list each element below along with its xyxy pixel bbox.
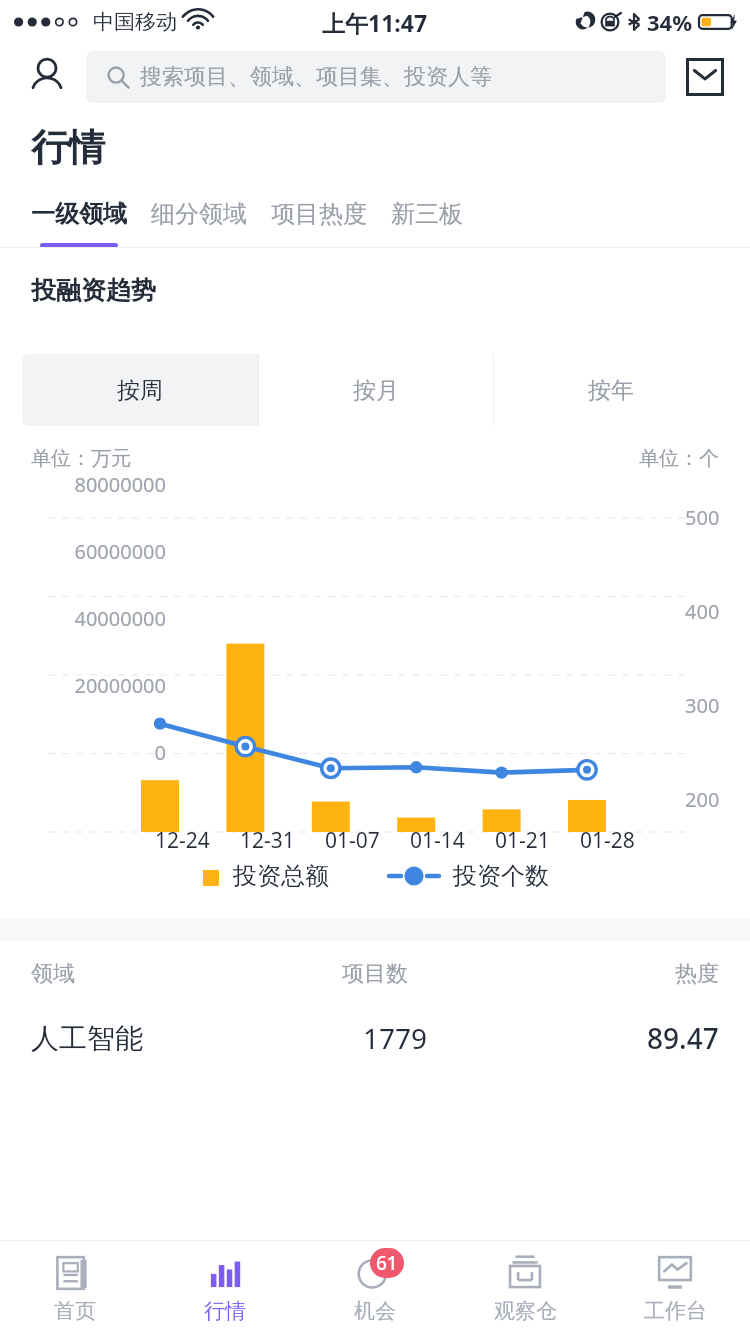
staticText: 34% [647,7,693,37]
button[interactable]: 新三板 [391,199,463,248]
staticText: 01-14 [410,826,465,855]
staticText: 400 [685,598,720,625]
button[interactable]: 按月 [258,354,493,426]
staticText: 0 [36,739,166,766]
staticText: 新三板 [391,199,463,229]
button[interactable]: 观察仓 [450,1241,600,1334]
staticText: 12-24 [155,826,210,855]
button[interactable]: Profile [22,52,72,102]
staticText: 项目热度 [271,199,367,229]
staticText: 500 [685,504,720,531]
button[interactable]: 按周 [22,354,258,426]
staticText: 上午11:47 [322,7,428,38]
staticText: 1779 [320,1019,470,1057]
staticText: 单位：万元 [31,446,131,471]
staticText: 中国移动 [93,9,177,35]
staticText: 行情 [204,1298,246,1324]
staticText: 300 [685,692,720,719]
button[interactable]: Messages [682,54,728,100]
staticText: 热度 [675,960,719,988]
staticText: 按月 [353,376,399,405]
staticText: 观察仓 [494,1298,557,1324]
staticText: 89.47 [647,1019,719,1057]
staticText: 12-31 [240,826,295,855]
staticText: 行情 [31,124,105,171]
staticText: 机会 [354,1298,396,1324]
staticText: 搜索项目、领域、项目集、投资人等 [140,63,492,91]
button[interactable]: 61 [300,1241,450,1334]
staticText: 按年 [588,376,634,405]
staticText: 投融资趋势 [31,275,156,306]
staticText: 01-21 [495,826,550,855]
button[interactable]: 人工智能 [0,1007,750,1069]
staticText: 01-07 [325,826,380,855]
button[interactable]: 工作台 [600,1241,750,1334]
staticText: 40000000 [36,605,166,632]
staticText: 首页 [54,1298,96,1324]
staticText: 细分领域 [151,199,247,229]
staticText: 项目数 [300,960,450,988]
staticText: 投资总额 [233,861,329,891]
button[interactable]: 行情 [150,1241,300,1334]
staticText: 工作台 [644,1298,707,1324]
button[interactable]: 搜索项目、领域、项目集、投资人等 [86,51,666,103]
staticText: 60000000 [36,538,166,565]
staticText: 200 [685,786,720,813]
button[interactable]: 一级领域 [31,199,127,248]
button[interactable]: 首页 [0,1241,150,1334]
button[interactable]: 项目热度 [271,199,367,248]
staticText: 单位：个 [639,446,719,471]
staticText: 领域 [31,960,75,988]
staticText: 61 [376,1250,398,1276]
staticText: 80000000 [36,471,166,498]
staticText: 人工智能 [31,1021,143,1056]
staticText: 20000000 [36,672,166,699]
staticText: 一级领域 [31,199,127,229]
staticText: 按周 [117,376,163,405]
button[interactable]: 按年 [493,354,728,426]
staticText: 01-28 [580,826,635,855]
staticText: 投资个数 [453,861,549,891]
button[interactable]: 细分领域 [151,199,247,248]
